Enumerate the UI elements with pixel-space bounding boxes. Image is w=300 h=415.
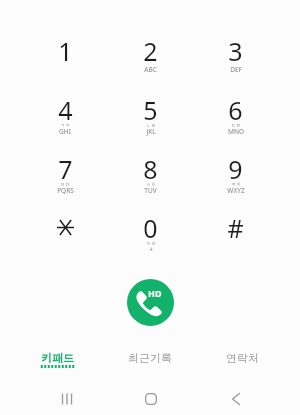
staticText: ABC — [144, 65, 157, 74]
staticText: 9 — [228, 152, 243, 186]
staticText: ㄷㅌ — [231, 122, 241, 128]
button[interactable]: 8 — [108, 145, 193, 204]
staticText: 연락처 — [226, 351, 259, 365]
button[interactable]: 연락처 — [196, 351, 289, 377]
staticText: GHI — [59, 127, 71, 136]
button[interactable]: 1 — [22, 27, 108, 86]
staticText: 0 — [143, 211, 158, 245]
staticText: 2 — [143, 34, 158, 68]
button[interactable]: Back — [192, 380, 275, 415]
staticText: 4 — [58, 93, 73, 127]
staticText: PQRS — [57, 186, 74, 195]
staticText: ㅈㅊ — [231, 181, 241, 187]
staticText: ㅂㅍ — [60, 181, 70, 187]
staticText: ㄱㅋ — [60, 122, 70, 128]
button[interactable]: Call — [127, 279, 174, 326]
staticText: JKL — [146, 127, 156, 136]
staticText: 최근기록 — [128, 351, 172, 365]
staticText: MNO — [228, 127, 244, 136]
staticText: ㄴㄹ — [146, 122, 156, 128]
button[interactable]: 최근기록 — [103, 351, 196, 377]
staticText: 7 — [58, 152, 73, 186]
button[interactable]: 7 — [22, 145, 108, 204]
button[interactable]: 키패드 — [11, 351, 103, 377]
staticText: WXYZ — [227, 186, 245, 195]
staticText: 키패드 — [41, 351, 74, 365]
button[interactable]: 0 — [108, 204, 193, 263]
button[interactable]: 3 — [193, 27, 278, 86]
button[interactable]: Home — [109, 380, 192, 415]
staticText: + — [149, 245, 153, 254]
staticText: 1 — [58, 34, 73, 68]
staticText: DEF — [230, 65, 242, 74]
staticText: 3 — [228, 34, 243, 68]
button[interactable]: 9 — [193, 145, 278, 204]
staticText: ㅅㅎ — [146, 181, 156, 187]
staticText: 5 — [143, 93, 158, 127]
staticText: 6 — [228, 93, 243, 127]
staticText: TUV — [144, 186, 157, 195]
staticText: # — [227, 211, 244, 245]
button[interactable]: 6 — [193, 86, 278, 145]
button[interactable]: Recent apps — [25, 380, 109, 415]
staticText: ㅇㅁ — [146, 240, 156, 246]
button[interactable]: 2 — [108, 27, 193, 86]
button[interactable]: # — [193, 204, 278, 263]
button[interactable] — [22, 204, 108, 263]
button[interactable]: 5 — [108, 86, 193, 145]
button[interactable]: 4 — [22, 86, 108, 145]
staticText: 8 — [143, 152, 158, 186]
staticText: HD — [148, 287, 162, 299]
